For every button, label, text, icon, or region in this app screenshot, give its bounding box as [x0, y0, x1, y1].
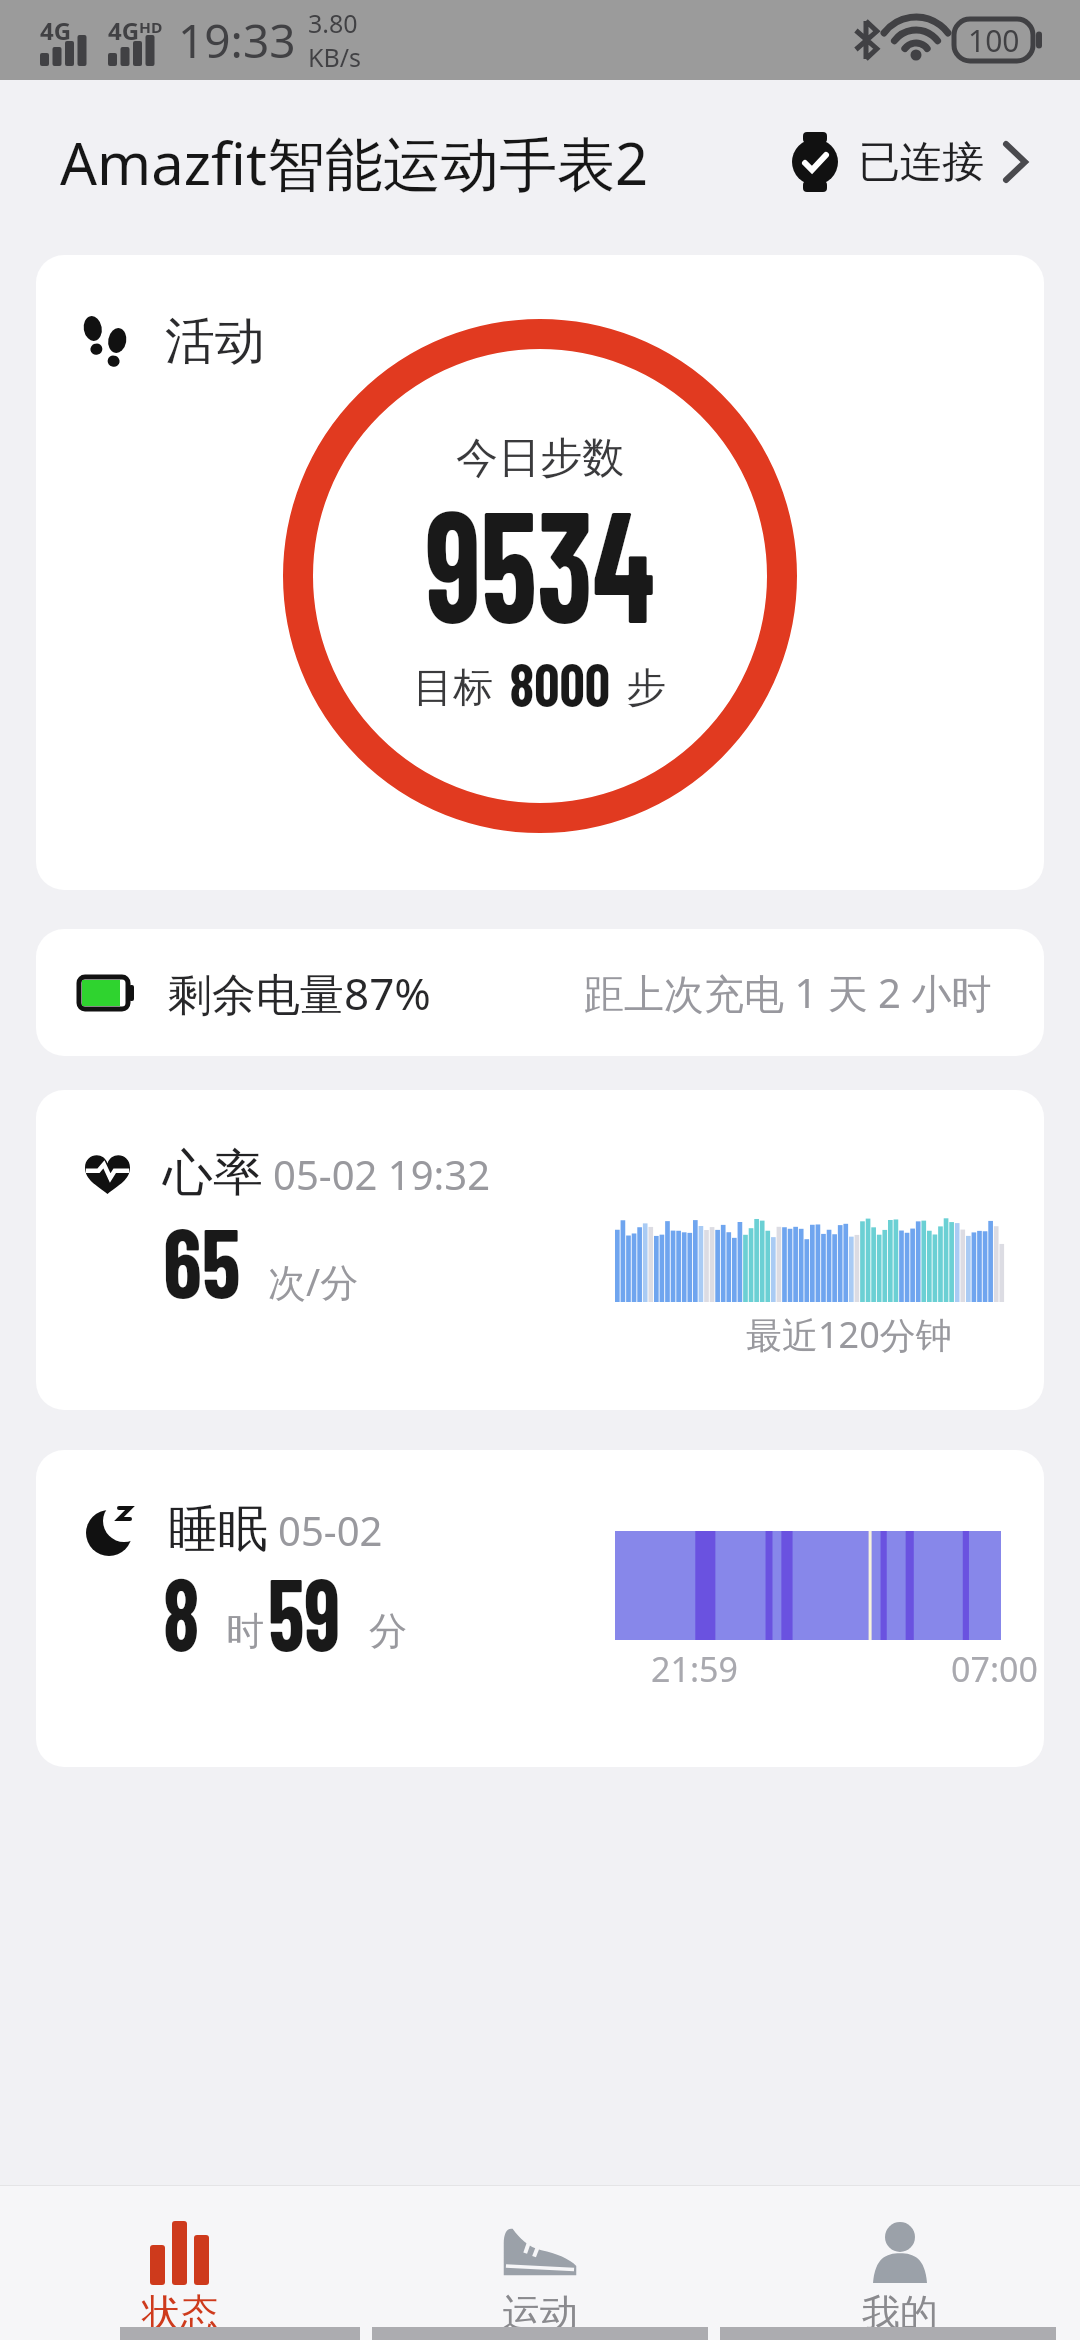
- staticText: 活动: [165, 310, 265, 373]
- staticText: 100: [968, 20, 1020, 61]
- staticText: 65: [163, 1201, 241, 1317]
- staticText: 睡眠: [168, 1498, 268, 1561]
- button[interactable]: 剩余电量87%: [36, 929, 1044, 1056]
- button[interactable]: 状态: [0, 2185, 360, 2340]
- staticText: 05-02 19:32: [273, 1147, 491, 1201]
- staticText: 05-02: [278, 1503, 383, 1557]
- button[interactable]: 睡眠: [36, 1450, 1044, 1767]
- staticText: 分: [369, 1607, 407, 1655]
- button[interactable]: 心率: [36, 1090, 1044, 1410]
- staticText: 状态: [142, 2289, 218, 2337]
- button[interactable]: 运动: [360, 2185, 720, 2340]
- staticText: 今日步数: [456, 432, 624, 485]
- staticText: 心率: [163, 1142, 263, 1205]
- staticText: Amazfit智能运动手表2: [60, 123, 649, 202]
- staticText: KB/s: [308, 40, 362, 74]
- staticText: 19:33: [178, 9, 296, 72]
- staticText: 运动: [502, 2289, 578, 2337]
- button[interactable]: 活动: [36, 255, 1044, 890]
- staticText: 59: [268, 1550, 341, 1671]
- staticText: 目标: [413, 658, 504, 713]
- button[interactable]: 我的: [720, 2185, 1080, 2340]
- staticText: 9534: [425, 467, 655, 654]
- staticText: 距上次充电 1 天 2 小时: [584, 965, 992, 1020]
- staticText: 8000: [510, 645, 610, 719]
- staticText: 3.80: [308, 6, 358, 40]
- staticText: 4Gᴴᴰ: [108, 14, 163, 47]
- staticText: 8: [163, 1550, 200, 1671]
- staticText: 我的: [862, 2289, 938, 2337]
- staticText: 步: [616, 658, 667, 713]
- staticText: 剩余电量87%: [168, 963, 431, 1023]
- staticText: 次/分: [268, 1255, 359, 1307]
- staticText: 4G: [40, 14, 72, 47]
- staticText: 已连接: [858, 136, 984, 189]
- staticText: 最近120分钟: [746, 1310, 952, 1359]
- staticText: 时: [226, 1607, 264, 1655]
- button[interactable]: 已连接: [792, 132, 1028, 192]
- staticText: 21:59: [651, 1646, 738, 1692]
- staticText: 07:00: [951, 1646, 1038, 1692]
